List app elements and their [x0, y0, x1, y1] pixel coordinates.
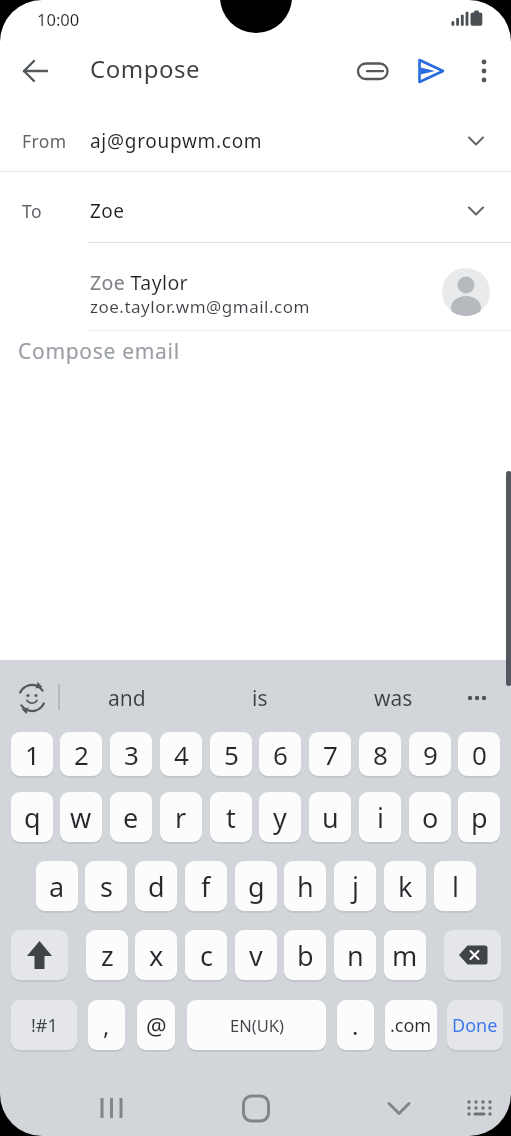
staticText: Zoe [90, 198, 125, 224]
button[interactable]: q [11, 792, 53, 842]
staticText: Compose [90, 52, 200, 85]
button[interactable]: i [359, 792, 401, 842]
button[interactable]: b [284, 930, 326, 980]
button[interactable] [455, 681, 499, 715]
staticText: was [374, 684, 413, 713]
button[interactable]: !#1 [11, 1000, 77, 1050]
staticText: g [248, 868, 265, 905]
button[interactable]: @ [137, 1000, 175, 1050]
button[interactable]: s [85, 861, 127, 911]
button[interactable] [233, 1085, 279, 1131]
staticText: 3 [124, 737, 139, 772]
staticText: is [252, 684, 268, 713]
button[interactable] [10, 680, 50, 716]
button[interactable] [444, 930, 501, 980]
button[interactable]: , [88, 1000, 125, 1050]
button[interactable]: d [135, 861, 177, 911]
button[interactable] [13, 49, 57, 93]
button[interactable]: Zoe Taylor [0, 243, 511, 331]
button[interactable]: .com [385, 1000, 437, 1050]
button[interactable]: To [0, 172, 511, 242]
button[interactable]: c [185, 930, 227, 980]
button[interactable]: e [110, 792, 152, 842]
button[interactable]: 6 [259, 732, 301, 776]
button[interactable] [462, 49, 506, 93]
staticText: e [123, 799, 139, 836]
staticText: , [103, 1009, 110, 1042]
button[interactable]: x [135, 930, 177, 980]
button[interactable]: 9 [409, 732, 451, 776]
button[interactable]: 0 [458, 732, 500, 776]
button[interactable] [90, 1085, 136, 1131]
button[interactable]: . [337, 1000, 374, 1050]
button[interactable]: 4 [160, 732, 202, 776]
button[interactable] [458, 1090, 500, 1126]
staticText: aj@groupwm.com [90, 128, 263, 154]
button[interactable]: was [353, 683, 433, 713]
button[interactable]: 5 [210, 732, 252, 776]
staticText: t [226, 799, 236, 836]
button[interactable]: l [434, 861, 476, 911]
button[interactable]: o [409, 792, 451, 842]
staticText: b [297, 937, 314, 974]
staticText: q [24, 799, 41, 836]
staticText: l [452, 868, 459, 905]
button[interactable] [350, 49, 394, 93]
button[interactable]: z [86, 930, 128, 980]
button[interactable]: From [0, 104, 511, 171]
button[interactable]: y [259, 792, 301, 842]
staticText: 7 [323, 737, 338, 772]
staticText: f [201, 868, 211, 905]
staticText: zoe.taylor.wm@gmail.com [90, 295, 310, 318]
staticText: j [352, 868, 359, 905]
staticText: s [100, 868, 113, 905]
button[interactable]: t [210, 792, 252, 842]
button[interactable]: 2 [60, 732, 102, 776]
staticText: Zoe Taylor [90, 269, 189, 296]
button[interactable]: 1 [11, 732, 53, 776]
button[interactable] [376, 1085, 422, 1131]
button[interactable]: EN(UK) [187, 1000, 326, 1050]
button[interactable]: n [334, 930, 376, 980]
staticText: EN(UK) [230, 1014, 284, 1036]
button[interactable]: 3 [110, 732, 152, 776]
button[interactable]: 8 [359, 732, 401, 776]
staticText: !#1 [31, 1013, 58, 1038]
button[interactable] [11, 930, 68, 980]
staticText: m [392, 937, 418, 974]
staticText: 2 [74, 737, 89, 772]
staticText: @ [146, 1010, 167, 1041]
staticText: z [101, 937, 114, 974]
button[interactable]: m [384, 930, 426, 980]
button[interactable]: is [220, 683, 300, 713]
button[interactable]: and [86, 683, 167, 713]
button[interactable]: w [60, 792, 102, 842]
staticText: 9 [423, 737, 438, 772]
staticText: 4 [174, 737, 189, 772]
staticText: x [149, 937, 164, 974]
button[interactable]: j [334, 861, 376, 911]
button[interactable] [406, 49, 454, 93]
button[interactable]: a [36, 861, 78, 911]
button[interactable]: h [284, 861, 326, 911]
button[interactable]: p [458, 792, 500, 842]
staticText: w [70, 799, 92, 836]
button[interactable]: Done [447, 1000, 503, 1050]
button[interactable]: Compose email [0, 332, 511, 378]
button[interactable]: f [185, 861, 227, 911]
button[interactable]: 7 [309, 732, 351, 776]
staticText: .com [390, 1013, 432, 1038]
button[interactable]: u [309, 792, 351, 842]
staticText: a [49, 868, 65, 905]
staticText: 8 [373, 737, 388, 772]
staticText: To [22, 199, 42, 223]
button[interactable]: r [160, 792, 202, 842]
staticText: 10:00 [37, 8, 80, 30]
staticText: y [273, 799, 287, 836]
button[interactable]: k [384, 861, 426, 911]
button[interactable]: v [235, 930, 277, 980]
button[interactable]: g [235, 861, 277, 911]
staticText: 1 [25, 737, 40, 772]
staticText: Done [452, 1013, 498, 1038]
staticText: c [200, 937, 213, 974]
